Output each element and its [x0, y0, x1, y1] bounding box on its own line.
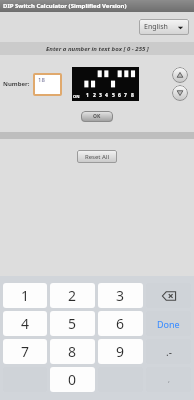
button[interactable]: 9 — [98, 339, 143, 364]
button[interactable]: 0 — [50, 367, 95, 392]
staticText: Enter a number in text box [ 0 - 255 ] — [46, 45, 149, 53]
staticText: .- — [166, 345, 172, 359]
button[interactable]: 7 — [3, 339, 47, 364]
staticText: 2 — [93, 92, 96, 99]
staticText: , — [168, 375, 170, 385]
staticText: ON — [73, 94, 80, 99]
button[interactable]: .- — [146, 339, 191, 364]
staticText: Reset All — [85, 153, 110, 161]
button[interactable]: 5 — [50, 311, 95, 336]
staticText: 0 — [68, 370, 77, 389]
staticText: 1 — [21, 286, 30, 305]
button[interactable]: 6 — [98, 311, 143, 336]
button[interactable]: 4 — [3, 311, 47, 336]
staticText: 3 — [116, 286, 125, 305]
staticText: 8 — [68, 342, 77, 361]
button[interactable]: ON — [72, 67, 139, 101]
staticText: DIP Switch Calculator (Simplified Versio… — [3, 2, 127, 10]
staticText: 2 — [68, 286, 77, 305]
staticText: 5 — [112, 92, 115, 99]
button[interactable]: Increase — [172, 67, 188, 83]
button[interactable]: English — [139, 19, 189, 35]
button[interactable]: Decrease — [172, 85, 188, 101]
button[interactable]: Reset All — [77, 150, 117, 163]
staticText: 5 — [68, 314, 77, 333]
button[interactable]: Done — [146, 311, 191, 336]
button[interactable]: OK — [81, 111, 113, 122]
staticText: 4 — [105, 92, 108, 99]
staticText: 7 — [124, 92, 127, 99]
button[interactable]: 1 — [3, 283, 47, 308]
staticText: 8 — [131, 92, 134, 99]
staticText: 3 — [99, 92, 102, 99]
staticText: OK — [93, 113, 101, 120]
button[interactable]: 18 — [35, 75, 60, 94]
button[interactable]: 8 — [50, 339, 95, 364]
staticText: 1 — [86, 92, 89, 99]
staticText: English — [144, 22, 168, 32]
button[interactable]: 2 — [50, 283, 95, 308]
button[interactable]: Delete — [146, 283, 191, 308]
staticText: Done — [157, 318, 180, 330]
staticText: 18 — [38, 76, 45, 84]
staticText: 9 — [116, 342, 125, 361]
staticText: 6 — [116, 314, 125, 333]
staticText: Number: — [3, 80, 30, 88]
staticText: 6 — [118, 92, 121, 99]
staticText: 4 — [21, 314, 30, 333]
button[interactable]: 3 — [98, 283, 143, 308]
staticText: 7 — [21, 342, 30, 361]
